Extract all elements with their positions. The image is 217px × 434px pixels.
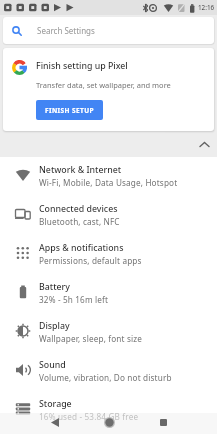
staticText: FINISH SETUP [45, 106, 94, 115]
button[interactable] [94, 413, 124, 432]
button[interactable] [148, 413, 178, 432]
staticText: Permissions, default apps [39, 255, 142, 266]
button[interactable]: Battery [0, 274, 217, 313]
button[interactable] [40, 413, 70, 432]
button[interactable]: Search Settings [3, 17, 214, 44]
staticText: Finish setting up Pixel [36, 60, 128, 72]
staticText: Wi-Fi, Mobile, Data Usage, Hotspot [39, 177, 178, 188]
button[interactable]: FINISH SETUP [36, 100, 103, 120]
staticText: Transfer data, set wallpaper, and more [36, 80, 171, 90]
button[interactable]: Sound [0, 352, 217, 391]
staticText: 32% - 5h 16m left [39, 294, 109, 305]
button[interactable]: Apps & notifications [0, 235, 217, 274]
staticText: Storage [39, 398, 72, 410]
staticText: Connected devices [39, 203, 118, 215]
staticText: Wallpaper, sleep, font size [39, 333, 143, 344]
staticText: Bluetooth, cast, NFC [39, 216, 120, 227]
button[interactable]: Network & Internet [0, 157, 217, 196]
staticText: Apps & notifications [39, 242, 124, 254]
staticText: Display [39, 320, 70, 332]
button[interactable] [0, 131, 217, 157]
staticText: Sound [39, 359, 66, 371]
staticText: Network & Internet [39, 164, 122, 176]
staticText: Search Settings [37, 25, 95, 36]
button[interactable]: Display [0, 313, 217, 352]
staticText: 12:16 [198, 3, 215, 12]
staticText: 16% used - 53.84 GB free [39, 411, 139, 422]
staticText: Volume, vibration, Do not disturb [39, 372, 172, 383]
button[interactable]: Connected devices [0, 196, 217, 235]
staticText: Battery [39, 281, 70, 293]
button[interactable]: Storage [0, 391, 217, 430]
